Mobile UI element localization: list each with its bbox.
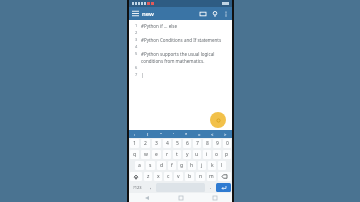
staticText: g	[180, 162, 184, 169]
button[interactable]: :	[129, 130, 141, 138]
button[interactable]: Enter	[216, 183, 231, 192]
staticText: <	[211, 132, 214, 137]
button[interactable]: *	[180, 130, 193, 138]
button[interactable]: 3	[152, 139, 161, 148]
button[interactable]: (	[141, 130, 154, 138]
button[interactable]: s	[146, 161, 155, 170]
staticText: 1	[133, 140, 136, 147]
button[interactable]: m	[207, 172, 216, 181]
button[interactable]: Back	[129, 193, 164, 202]
button[interactable]: Shift	[130, 172, 142, 181]
staticText: 5	[135, 51, 138, 56]
button[interactable]: u	[193, 150, 201, 159]
staticText: 6	[135, 65, 138, 70]
staticText: p	[225, 151, 229, 158]
staticText: =	[198, 132, 201, 137]
button[interactable]: j	[198, 161, 206, 170]
button[interactable]: c	[164, 172, 172, 181]
button[interactable]: 2	[141, 139, 150, 148]
button[interactable]: 6	[183, 139, 191, 148]
button[interactable]: Navigation drawer	[129, 7, 142, 20]
staticText: y	[186, 151, 189, 158]
button[interactable]: Run	[210, 112, 226, 128]
staticText: |	[141, 72, 144, 78]
button[interactable]: Tabs	[196, 7, 209, 20]
staticText: n	[199, 173, 203, 180]
staticText: .	[210, 184, 212, 191]
staticText: v	[177, 173, 180, 180]
button[interactable]: n	[196, 172, 205, 181]
button[interactable]: e	[152, 150, 161, 159]
staticText: 6	[186, 140, 189, 147]
staticText: e	[155, 151, 158, 158]
staticText: new	[142, 10, 154, 18]
button[interactable]: r	[163, 150, 171, 159]
button[interactable]: 8	[203, 139, 211, 148]
button[interactable]: =	[193, 130, 206, 138]
staticText: #Python Conditions and If statements	[141, 37, 222, 43]
button[interactable]: ?123	[130, 183, 145, 192]
button[interactable]: <	[206, 130, 219, 138]
button[interactable]: '	[167, 130, 180, 138]
button[interactable]: k	[208, 161, 216, 170]
button[interactable]: b	[185, 172, 194, 181]
button[interactable]: 9	[213, 139, 221, 148]
staticText: 9	[216, 140, 219, 147]
button[interactable]: Home	[164, 193, 198, 202]
button[interactable]: w	[141, 150, 150, 159]
staticText: r	[166, 151, 169, 158]
button[interactable]: p	[223, 150, 231, 159]
button[interactable]: Backspace	[218, 172, 231, 181]
button[interactable]: More options	[220, 8, 231, 19]
button[interactable]: l	[218, 161, 226, 170]
staticText: 7	[196, 140, 199, 147]
button[interactable]: i	[203, 150, 211, 159]
button[interactable]: 4	[163, 139, 171, 148]
staticText: 2	[135, 30, 138, 35]
staticText: b	[188, 173, 192, 180]
staticText: j	[201, 162, 203, 169]
button[interactable]: t	[173, 150, 181, 159]
button[interactable]: q	[130, 150, 139, 159]
staticText: m	[209, 173, 214, 180]
button[interactable]: h	[188, 161, 196, 170]
staticText: d	[160, 162, 164, 169]
staticText: c	[167, 173, 170, 180]
staticText: 1	[135, 23, 138, 28]
button[interactable]: 1	[130, 139, 139, 148]
staticText: s	[149, 162, 152, 169]
staticText: '	[173, 132, 174, 137]
staticText: >	[224, 132, 227, 137]
button[interactable]: x	[154, 172, 162, 181]
staticText: ?123	[133, 185, 142, 190]
button[interactable]: y	[183, 150, 191, 159]
staticText: u	[195, 151, 199, 158]
button[interactable]: ,	[147, 183, 154, 192]
staticText: ,	[150, 184, 152, 191]
button[interactable]: z	[144, 172, 152, 181]
staticText: "	[160, 132, 162, 137]
button[interactable]: >	[219, 130, 232, 138]
staticText: q	[133, 151, 137, 158]
staticText: i	[206, 151, 208, 158]
button[interactable]: 0	[223, 139, 231, 148]
button[interactable]: g	[178, 161, 186, 170]
staticText: conditions from mathematics.	[141, 58, 205, 64]
staticText: 4	[135, 44, 138, 49]
button[interactable]: Search	[209, 8, 220, 19]
button[interactable]: a	[135, 161, 144, 170]
button[interactable]: o	[213, 150, 221, 159]
button[interactable]: Recents	[198, 193, 232, 202]
button[interactable]: v	[174, 172, 183, 181]
button[interactable]: 5	[173, 139, 181, 148]
button[interactable]: .	[207, 183, 214, 192]
staticText: 8	[206, 140, 209, 147]
staticText: 5	[176, 140, 179, 147]
button[interactable]: f	[168, 161, 176, 170]
button[interactable]: d	[157, 161, 166, 170]
staticText: 0	[226, 140, 229, 147]
button[interactable]: 7	[193, 139, 201, 148]
button[interactable]: "	[154, 130, 167, 138]
staticText: #Python if ... else	[141, 23, 178, 29]
